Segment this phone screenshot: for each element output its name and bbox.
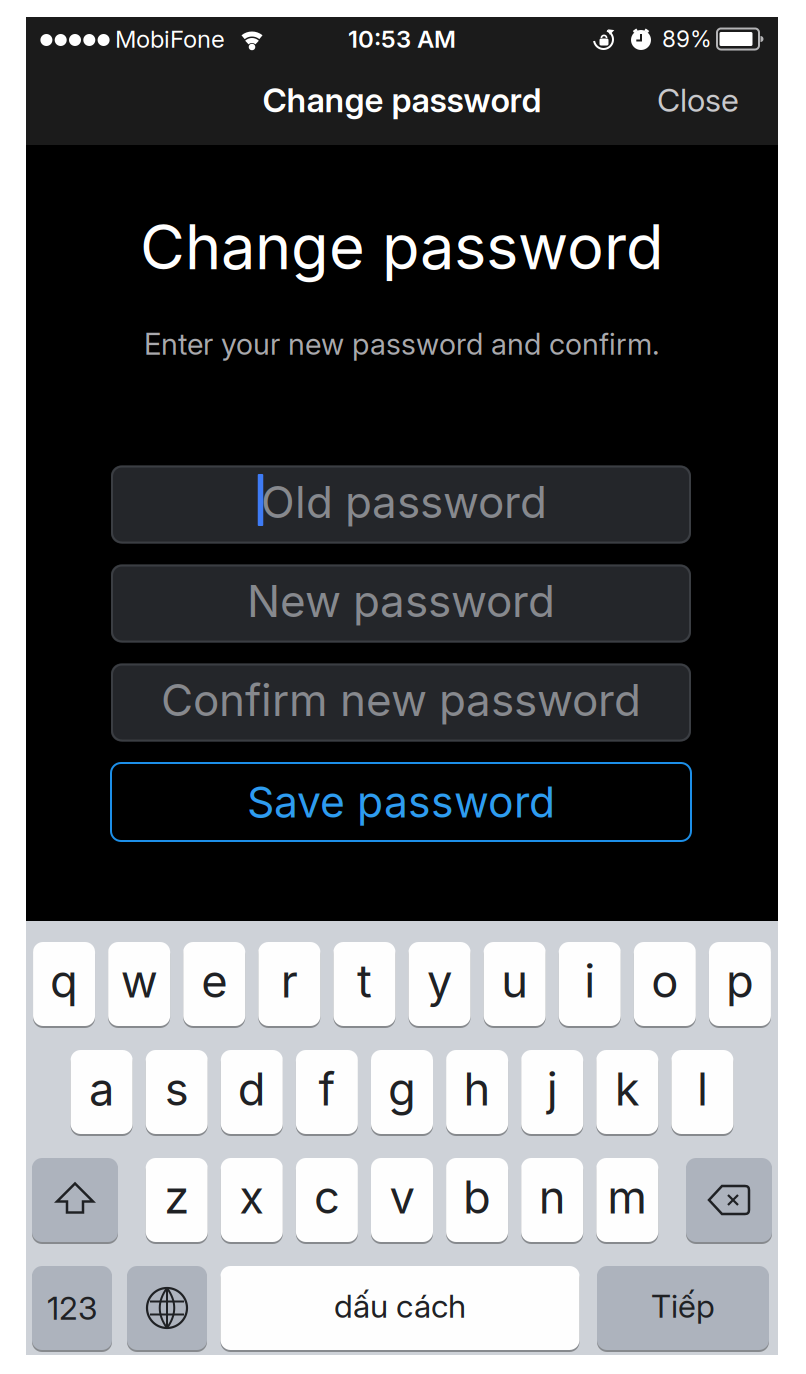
button[interactable]: Confirm new password [111, 663, 691, 741]
button[interactable]: x [221, 1157, 283, 1243]
button[interactable]: m [596, 1157, 658, 1243]
staticText: Close [657, 81, 739, 119]
button[interactable]: h [446, 1049, 508, 1135]
button[interactable]: l [671, 1049, 733, 1135]
button[interactable]: a [71, 1049, 133, 1135]
staticText: y [427, 954, 452, 1008]
staticText: t [357, 954, 372, 1008]
staticText: e [201, 954, 227, 1008]
staticText: v [389, 1170, 414, 1224]
button[interactable]: u [484, 941, 546, 1027]
button[interactable]: Shift [32, 1157, 118, 1243]
staticText: f [318, 1062, 335, 1116]
staticText: g [388, 1062, 416, 1116]
staticText: p [726, 954, 754, 1008]
button[interactable]: y [409, 941, 471, 1027]
staticText: m [607, 1170, 647, 1224]
button[interactable]: n [521, 1157, 583, 1243]
button[interactable]: s [146, 1049, 208, 1135]
staticText: j [547, 1062, 558, 1116]
staticText: MobiFone [115, 25, 225, 53]
staticText: q [50, 954, 78, 1008]
button[interactable]: 123 [32, 1265, 112, 1351]
staticText: o [651, 954, 678, 1008]
button[interactable]: New password [111, 564, 691, 642]
staticText: i [584, 954, 595, 1008]
staticText: dấu cách [334, 1287, 466, 1325]
button[interactable]: g [371, 1049, 433, 1135]
button[interactable]: Delete [686, 1157, 772, 1243]
button[interactable]: z [146, 1157, 208, 1243]
button[interactable]: d [221, 1049, 283, 1135]
button[interactable]: e [183, 941, 245, 1027]
staticText: n [539, 1170, 566, 1224]
staticText: Confirm new password [161, 674, 641, 726]
staticText: u [501, 954, 528, 1008]
staticText: d [238, 1062, 266, 1116]
button[interactable]: Close [628, 56, 768, 144]
button[interactable]: Next keyboard [127, 1265, 207, 1351]
button[interactable]: Save password [111, 763, 691, 841]
button[interactable]: j [521, 1049, 583, 1135]
staticText: r [281, 954, 298, 1008]
button[interactable]: i [559, 941, 621, 1027]
staticText: Old password [261, 476, 547, 528]
button[interactable]: dấu cách [220, 1265, 579, 1351]
button[interactable]: w [108, 941, 170, 1027]
staticText: z [164, 1170, 189, 1224]
staticText: Enter your new password and confirm. [144, 327, 660, 361]
button[interactable]: Old password [111, 465, 691, 543]
staticText: s [165, 1062, 189, 1116]
button[interactable]: p [709, 941, 771, 1027]
button[interactable]: q [33, 941, 95, 1027]
button[interactable]: o [634, 941, 696, 1027]
staticText: w [121, 954, 158, 1008]
staticText: Save password [247, 777, 555, 827]
staticText: Change password [140, 211, 664, 283]
staticText: c [314, 1170, 340, 1224]
staticText: 89% [662, 26, 712, 52]
staticText: 123 [47, 1289, 97, 1327]
staticText: Change password [262, 80, 541, 120]
button[interactable]: b [446, 1157, 508, 1243]
button[interactable]: v [371, 1157, 433, 1243]
staticText: b [463, 1170, 491, 1224]
button[interactable]: c [296, 1157, 358, 1243]
staticText: k [615, 1062, 640, 1116]
staticText: h [464, 1062, 491, 1116]
staticText: l [697, 1062, 708, 1116]
button[interactable]: f [296, 1049, 358, 1135]
button[interactable]: k [596, 1049, 658, 1135]
button[interactable]: r [258, 941, 320, 1027]
staticText: New password [247, 575, 555, 627]
staticText: a [89, 1062, 114, 1116]
staticText: Tiếp [651, 1287, 715, 1325]
button[interactable]: Tiếp [597, 1265, 769, 1351]
button[interactable]: t [333, 941, 395, 1027]
staticText: 10:53 AM [348, 25, 456, 53]
staticText: x [239, 1170, 264, 1224]
